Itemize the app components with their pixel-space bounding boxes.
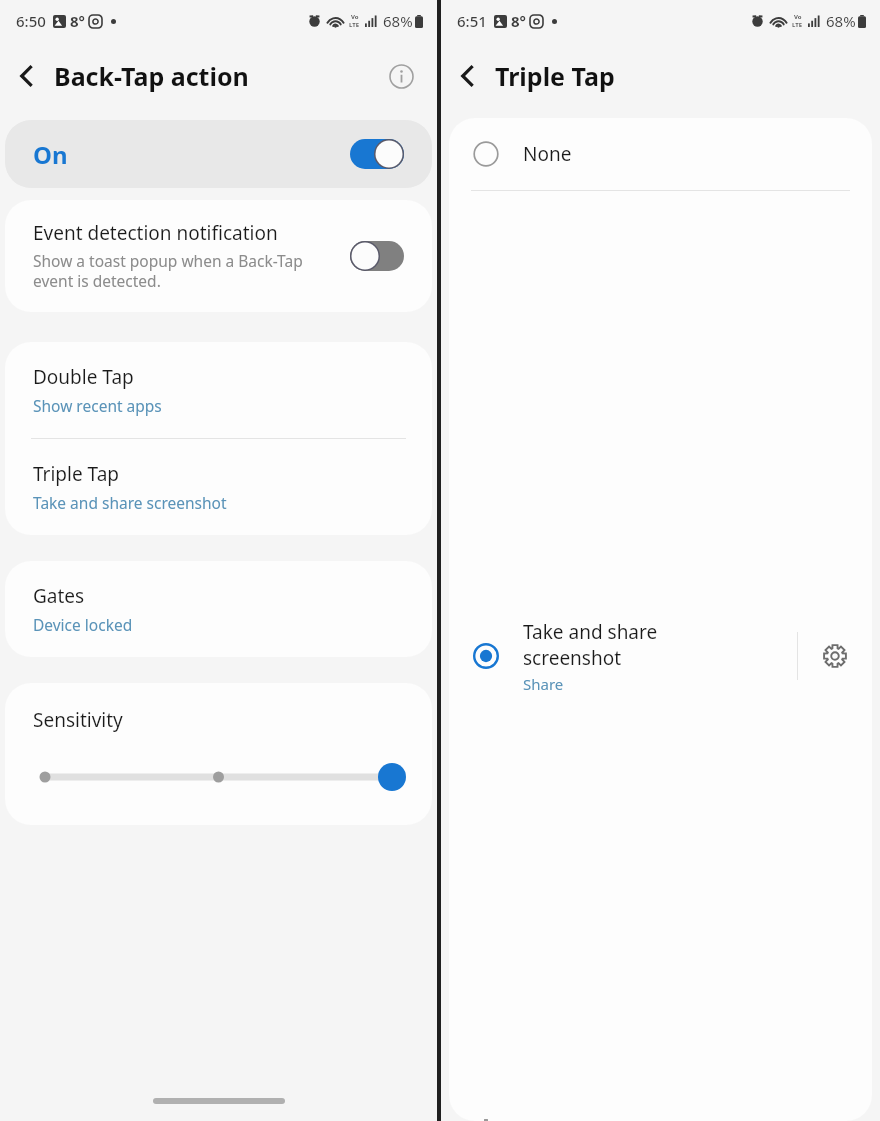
button[interactable]: None (449, 118, 872, 190)
staticText: Triple Tap (33, 461, 119, 487)
button[interactable]: Event detection notification (5, 200, 432, 312)
staticText: 6:51 (457, 11, 487, 31)
staticText: Take and share screenshot (33, 492, 227, 513)
button[interactable]: Double Tap (5, 342, 432, 438)
button[interactable]: Take and share screenshot (449, 191, 872, 1121)
staticText: 6:50 (16, 11, 46, 31)
staticText: 8° (70, 11, 85, 31)
staticText: Show recent apps (33, 395, 162, 416)
staticText: 68% (826, 11, 856, 31)
staticText: Double Tap (33, 364, 134, 390)
staticText: On (33, 138, 68, 171)
button[interactable]: Back (441, 49, 495, 103)
button[interactable]: Switch off (350, 241, 404, 271)
staticText: Take and share screenshot (523, 619, 658, 671)
button[interactable]: Gates (5, 561, 432, 657)
button[interactable]: Settings (798, 191, 872, 1121)
staticText: 8° (511, 11, 526, 31)
staticText: Sensitivity (33, 707, 123, 733)
staticText: Share (523, 674, 564, 694)
staticText: LTE (792, 21, 803, 29)
button[interactable]: Switch on (350, 139, 404, 169)
button[interactable]: Back (0, 49, 54, 103)
staticText: Event detection notification (33, 220, 278, 246)
button[interactable]: On (5, 120, 432, 188)
staticText: Device locked (33, 614, 133, 635)
staticText: Show a toast popup when a Back-Tap event… (33, 250, 303, 292)
staticText: None (523, 141, 572, 167)
staticText: Gates (33, 583, 85, 609)
staticText: 68% (383, 11, 413, 31)
staticText: Back-Tap action (54, 59, 249, 93)
button[interactable]: Information (381, 56, 421, 96)
staticText: Vo (794, 13, 802, 21)
button[interactable]: Triple Tap (5, 439, 432, 535)
staticText: Vo (351, 13, 359, 21)
staticText: LTE (349, 21, 360, 29)
button[interactable] (45, 759, 392, 795)
staticText: Triple Tap (495, 59, 615, 93)
